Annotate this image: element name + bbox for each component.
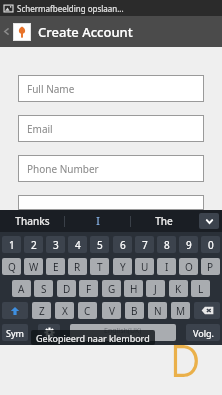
button[interactable]: F bbox=[79, 280, 98, 297]
button[interactable]: Phone Number bbox=[18, 155, 204, 182]
staticText: 4 bbox=[75, 238, 81, 252]
staticText: Email bbox=[27, 122, 53, 136]
staticText: The bbox=[155, 214, 173, 228]
staticText: P bbox=[207, 260, 214, 274]
staticText: Schermafbeelding opslaan... bbox=[17, 3, 124, 14]
button[interactable]: J bbox=[146, 280, 165, 297]
staticText: L bbox=[198, 282, 204, 296]
staticText: 3 bbox=[53, 238, 59, 252]
button[interactable]: W bbox=[24, 258, 43, 275]
staticText: R bbox=[74, 260, 81, 274]
staticText: D bbox=[63, 282, 71, 296]
staticText: J bbox=[154, 282, 157, 296]
button[interactable]: L bbox=[191, 280, 210, 297]
staticText: I bbox=[96, 214, 100, 228]
button[interactable]: H bbox=[124, 280, 143, 297]
staticText: S bbox=[41, 282, 47, 296]
button[interactable]: O bbox=[179, 258, 198, 275]
staticText: Y bbox=[120, 260, 126, 274]
staticText: Volg. bbox=[193, 327, 214, 339]
staticText: 2 bbox=[31, 238, 37, 252]
staticText: Q bbox=[8, 260, 16, 274]
button[interactable]: Q bbox=[2, 258, 21, 275]
button[interactable]: Y bbox=[113, 258, 132, 275]
staticText: N bbox=[154, 304, 162, 318]
staticText: K bbox=[175, 282, 182, 296]
button[interactable]: X bbox=[55, 302, 74, 319]
staticText: 0 bbox=[208, 238, 214, 252]
button[interactable]: 5 bbox=[90, 236, 109, 253]
button[interactable]: Sym bbox=[2, 324, 28, 341]
staticText: Create Account bbox=[38, 23, 133, 41]
staticText: F bbox=[86, 282, 92, 296]
staticText: Gekopieerd naar klembord bbox=[36, 332, 150, 344]
button[interactable]: M bbox=[171, 302, 190, 319]
button[interactable]: The bbox=[131, 210, 196, 232]
button[interactable] bbox=[18, 195, 204, 210]
staticText: X bbox=[62, 304, 68, 318]
staticText: English(UK) bbox=[104, 326, 142, 336]
staticText: 5 bbox=[97, 238, 103, 252]
staticText: E bbox=[53, 260, 59, 274]
button[interactable]: Z bbox=[32, 302, 51, 319]
button[interactable]: 7 bbox=[135, 236, 154, 253]
button[interactable]: Backspace bbox=[194, 302, 220, 319]
button[interactable]: E bbox=[46, 258, 65, 275]
button[interactable]: 0 bbox=[201, 236, 220, 253]
button[interactable]: P bbox=[201, 258, 220, 275]
button[interactable]: U bbox=[135, 258, 154, 275]
button[interactable]: T bbox=[90, 258, 109, 275]
staticText: Sym bbox=[6, 327, 24, 339]
button[interactable]: Volg. bbox=[186, 324, 220, 341]
button[interactable]: 8 bbox=[157, 236, 176, 253]
staticText: A bbox=[18, 282, 25, 296]
button[interactable]: 6 bbox=[113, 236, 132, 253]
staticText: 6 bbox=[120, 238, 126, 252]
button[interactable]: Full Name bbox=[18, 75, 204, 102]
staticText: B bbox=[131, 304, 138, 318]
button[interactable]: D bbox=[57, 280, 76, 297]
staticText: H bbox=[130, 282, 138, 296]
button[interactable]: Expand suggestions bbox=[199, 213, 219, 229]
button[interactable]: K bbox=[169, 280, 188, 297]
button[interactable]: I bbox=[157, 258, 176, 275]
button[interactable]: S bbox=[34, 280, 53, 297]
staticText: W bbox=[29, 260, 39, 274]
staticText: 7 bbox=[142, 238, 148, 252]
staticText: O bbox=[185, 260, 193, 274]
staticText: U bbox=[141, 260, 149, 274]
button[interactable]: 1 bbox=[2, 236, 21, 253]
button[interactable]: A bbox=[12, 280, 31, 297]
button[interactable]: Back bbox=[0, 16, 13, 47]
button[interactable]: I bbox=[65, 210, 130, 232]
staticText: T bbox=[97, 260, 103, 274]
staticText: 1 bbox=[9, 238, 15, 252]
button[interactable]: Thanks bbox=[0, 210, 64, 232]
staticText: Full Name bbox=[27, 82, 75, 96]
staticText: Z bbox=[39, 304, 45, 318]
staticText: C bbox=[84, 304, 91, 318]
button[interactable]: C bbox=[78, 302, 97, 319]
button[interactable]: English(UK) bbox=[70, 324, 176, 341]
button[interactable]: R bbox=[68, 258, 87, 275]
staticText: M bbox=[176, 304, 186, 318]
staticText: G bbox=[108, 282, 116, 296]
button[interactable]: 3 bbox=[46, 236, 65, 253]
staticText: 8 bbox=[164, 238, 170, 252]
staticText: Phone Number bbox=[27, 162, 99, 176]
staticText: I bbox=[165, 260, 169, 274]
button[interactable]: 9 bbox=[179, 236, 198, 253]
button[interactable]: 4 bbox=[68, 236, 87, 253]
button[interactable]: Settings bbox=[38, 324, 60, 341]
button[interactable]: Email bbox=[18, 115, 204, 142]
staticText: V bbox=[109, 304, 115, 318]
button[interactable]: Shift bbox=[2, 302, 28, 319]
button[interactable]: B bbox=[125, 302, 144, 319]
staticText: 9 bbox=[186, 238, 192, 252]
button[interactable]: V bbox=[102, 302, 121, 319]
staticText: Thanks bbox=[15, 214, 50, 228]
button[interactable]: 2 bbox=[24, 236, 43, 253]
button[interactable]: G bbox=[102, 280, 121, 297]
button[interactable]: N bbox=[148, 302, 167, 319]
